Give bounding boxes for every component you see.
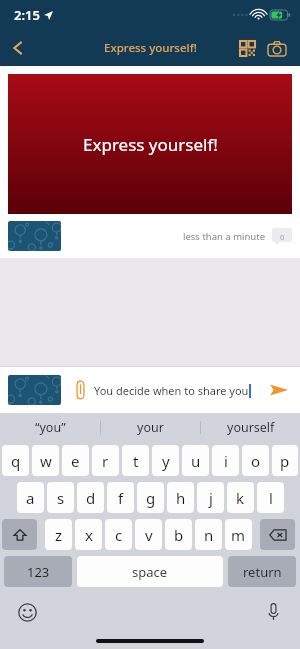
staticText: d [86,488,96,508]
staticText: h [176,488,186,508]
button[interactable]: Scan QR code [232,33,262,63]
staticText: j [209,488,213,508]
button[interactable]: your [101,414,200,440]
button[interactable]: w [32,445,59,476]
button[interactable]: h [167,482,194,513]
button[interactable]: Dictation [260,599,286,625]
button[interactable]: o [242,445,269,476]
button[interactable]: Send [266,377,292,403]
button[interactable]: Attach file [70,377,90,403]
button[interactable]: a [17,482,44,513]
staticText: i [224,451,228,471]
staticText: less than a minute [183,230,266,243]
staticText: Express yourself! [83,133,218,156]
button[interactable]: You decide when to share you [94,383,260,398]
button[interactable]: s [47,482,74,513]
button[interactable]: g [137,482,164,513]
button[interactable]: 123 [4,556,72,587]
staticText: your [137,419,164,436]
button[interactable]: Back [0,30,36,66]
button[interactable]: Camera [262,33,292,63]
staticText: w [40,451,52,471]
button[interactable]: y [152,445,179,476]
staticText: g [146,488,156,508]
button[interactable]: q [2,445,29,476]
button[interactable]: b [165,519,192,550]
button[interactable]: l [257,482,284,513]
staticText: x [85,525,93,545]
button[interactable]: f [107,482,134,513]
staticText: e [71,451,80,471]
button[interactable]: k [227,482,254,513]
staticText: space [132,563,168,581]
staticText: n [204,525,214,545]
staticText: m [231,525,246,545]
staticText: yourself [227,419,275,436]
staticText: u [191,451,201,471]
staticText: 0 [280,232,285,242]
button[interactable]: x [75,519,102,550]
staticText: t [133,451,139,471]
staticText: 2:15 [14,6,40,24]
button[interactable]: c [105,519,132,550]
button[interactable]: Shift [2,519,37,550]
button[interactable]: j [197,482,224,513]
staticText: r [102,451,109,471]
button[interactable]: Emoji keyboard [14,599,40,625]
staticText: Express yourself! [104,40,197,56]
button[interactable]: e [62,445,89,476]
staticText: c [115,525,123,545]
staticText: k [236,488,245,508]
button[interactable]: m [225,519,252,550]
button[interactable]: z [45,519,72,550]
staticText: return [243,563,282,581]
button[interactable]: p [272,445,298,476]
staticText: b [174,525,184,545]
button[interactable]: n [195,519,222,550]
staticText: a [26,488,35,508]
button[interactable] [8,221,61,251]
button[interactable]: Delete [260,519,295,550]
staticText: q [11,451,21,471]
button[interactable]: return [228,556,296,587]
staticText: z [55,525,63,545]
staticText: 123 [27,563,50,581]
staticText: “you” [35,419,66,436]
button[interactable]: space [77,556,223,587]
button[interactable]: u [182,445,209,476]
button[interactable]: i [212,445,239,476]
button[interactable]: “you” [0,414,100,440]
button[interactable]: v [135,519,162,550]
staticText: y [162,451,170,471]
staticText: f [118,488,124,508]
staticText: o [251,451,261,471]
button[interactable]: r [92,445,119,476]
button[interactable]: yourself [201,414,300,440]
staticText: p [280,451,290,471]
button[interactable]: d [77,482,104,513]
button[interactable] [8,375,61,405]
button[interactable]: Express yourself! [8,74,292,214]
staticText: l [269,488,273,508]
button[interactable]: Comments [272,228,292,245]
staticText: v [145,525,153,545]
button[interactable]: t [122,445,149,476]
staticText: s [57,488,65,508]
staticText: You decide when to share you [94,383,249,398]
